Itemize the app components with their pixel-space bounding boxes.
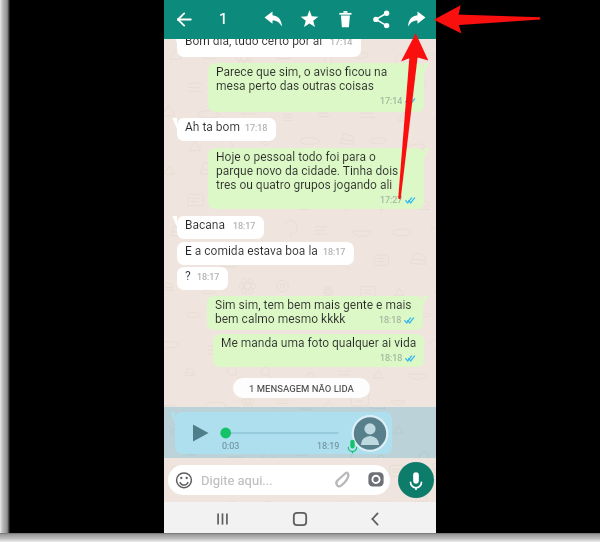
button[interactable]: Voice message, 0:03 <box>175 412 392 454</box>
button[interactable]: Digite aqui... <box>168 465 390 495</box>
staticText: bem calmo mesmo kkkk <box>215 312 346 326</box>
button[interactable]: ? <box>177 267 228 290</box>
staticText: Hoje o pessoal todo foi para o <box>216 150 376 164</box>
staticText: Parece que sim, o aviso ficou na <box>216 65 388 79</box>
staticText: Ah ta bom <box>185 120 240 134</box>
staticText: tres ou quatro grupos jogando ali <box>216 178 393 192</box>
button[interactable]: Me manda uma foto qualquer ai vida <box>213 334 424 367</box>
staticText: 17:14 <box>330 39 353 48</box>
staticText: Bacana <box>185 218 225 232</box>
staticText: 1 <box>219 10 228 28</box>
staticText: Bom dia, tudo certo por ai <box>185 39 323 48</box>
button[interactable]: 1 <box>212 8 234 30</box>
staticText: 17:18 <box>245 123 268 134</box>
staticText: Me manda uma foto qualquer ai vida <box>221 336 417 350</box>
button[interactable]: Recent apps <box>210 504 236 530</box>
staticText: mesa perto das outras coisas <box>216 79 375 93</box>
staticText: Digite aqui... <box>201 473 273 488</box>
staticText: ? <box>185 269 191 283</box>
button[interactable]: E a comida estava boa la <box>177 242 354 265</box>
staticText: Sim sim, tem bem mais gente e mais <box>215 298 412 312</box>
staticText: 1 MENSAGEM NÃO LIDA <box>249 383 354 394</box>
staticText: E a comida estava boa la <box>185 244 318 258</box>
button[interactable]: Ah ta bom <box>177 118 276 141</box>
button[interactable]: Parece que sim, o aviso ficou na <box>208 63 424 112</box>
button[interactable]: Back <box>174 9 195 30</box>
button[interactable]: Bacana <box>177 216 264 239</box>
button[interactable]: Reply <box>263 9 284 30</box>
staticText: 18:17 <box>233 221 256 232</box>
button[interactable]: Bom dia, tudo certo por ai <box>177 39 361 57</box>
button[interactable]: Sim sim, tem bem mais gente e mais <box>207 296 423 330</box>
button[interactable]: Forward <box>406 9 427 30</box>
staticText: 18:18 <box>380 353 403 364</box>
staticText: 18:19 <box>317 441 340 452</box>
button[interactable]: Share <box>371 9 392 30</box>
staticText: 18:17 <box>197 272 220 283</box>
staticText: 17:27 <box>380 195 403 206</box>
staticText: 18:18 <box>379 315 402 326</box>
button[interactable]: Home <box>287 504 313 530</box>
staticText: parque novo da cidade. Tinha dois <box>216 164 399 178</box>
button[interactable]: Record voice message <box>398 462 434 498</box>
staticText: 0:03 <box>222 441 240 452</box>
button[interactable]: Star <box>299 9 320 30</box>
staticText: 17:14 <box>380 96 403 107</box>
button[interactable]: Hoje o pessoal todo foi para o <box>208 148 424 209</box>
button[interactable]: 1 MENSAGEM NÃO LIDA <box>233 378 370 398</box>
button[interactable]: Delete <box>335 9 356 30</box>
button[interactable]: Back <box>362 504 388 530</box>
staticText: 18:17 <box>323 247 346 258</box>
